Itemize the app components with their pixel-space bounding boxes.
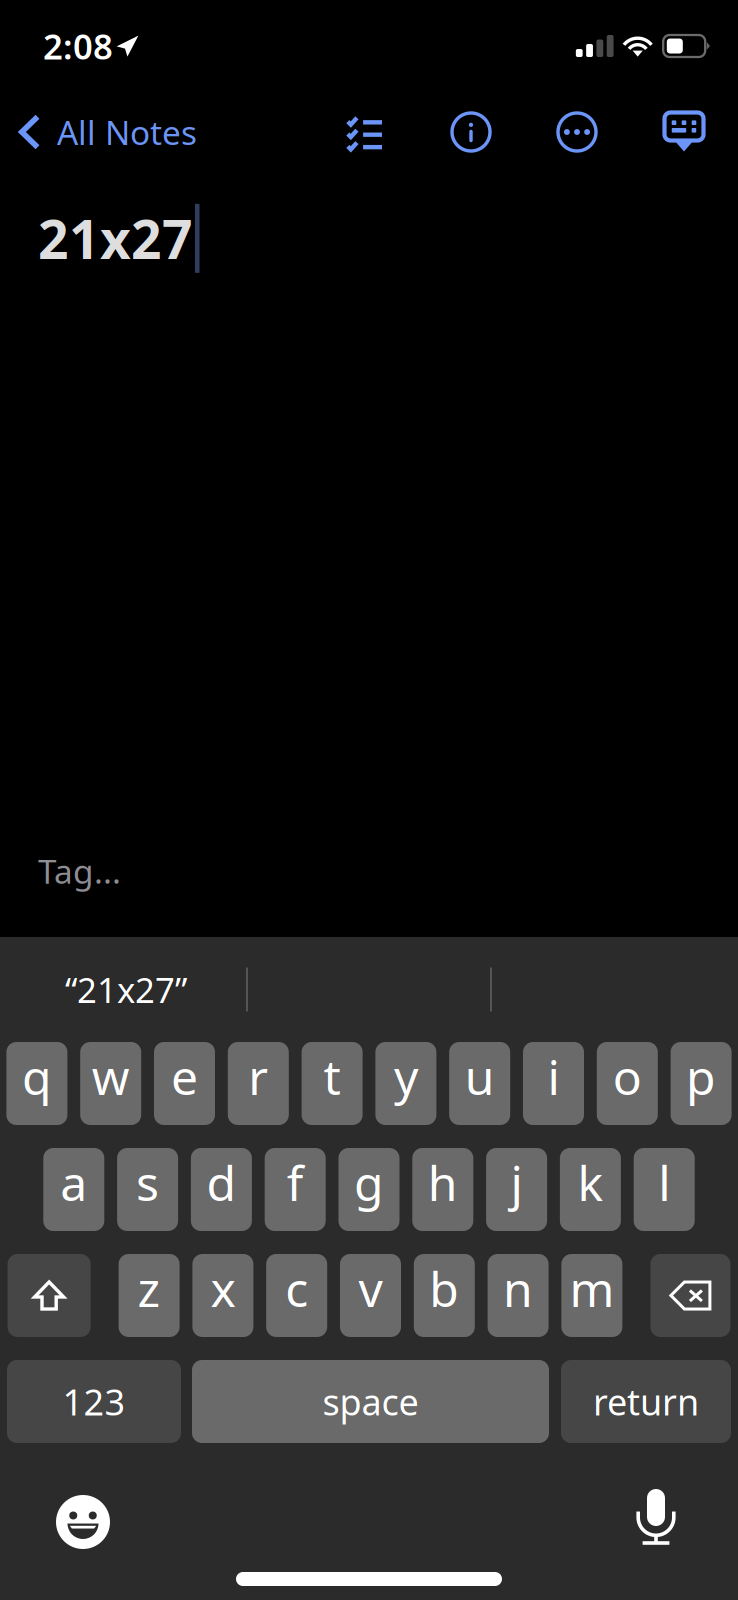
- button[interactable]: Checklist: [327, 92, 403, 172]
- staticText: n: [503, 1257, 533, 1320]
- button[interactable]: m: [561, 1254, 622, 1337]
- staticText: 2:08: [43, 23, 113, 69]
- button[interactable]: i: [523, 1042, 584, 1125]
- staticText: u: [465, 1045, 495, 1108]
- staticText: j: [511, 1151, 523, 1214]
- button[interactable]: v: [340, 1254, 401, 1337]
- staticText: a: [60, 1151, 87, 1214]
- staticText: e: [171, 1045, 198, 1108]
- button[interactable]: a: [43, 1148, 104, 1231]
- staticText: 123: [62, 1378, 125, 1425]
- staticText: q: [22, 1045, 52, 1108]
- staticText: h: [428, 1151, 458, 1214]
- button[interactable]: Dictate: [616, 1489, 696, 1555]
- button[interactable]: More options: [541, 92, 613, 172]
- staticText: c: [285, 1257, 308, 1320]
- button[interactable]: space: [192, 1360, 549, 1443]
- button[interactable]: p: [671, 1042, 732, 1125]
- button[interactable]: “21x27”: [6, 950, 246, 1028]
- staticText: d: [206, 1151, 236, 1214]
- staticText: f: [287, 1151, 304, 1214]
- button[interactable]: h: [412, 1148, 473, 1231]
- button[interactable]: 123: [7, 1360, 181, 1443]
- button[interactable]: j: [486, 1148, 547, 1231]
- button[interactable]: o: [597, 1042, 658, 1125]
- button[interactable]: f: [265, 1148, 326, 1231]
- staticText: 21x27: [38, 203, 193, 274]
- staticText: “21x27”: [65, 966, 187, 1012]
- staticText: t: [324, 1045, 341, 1108]
- staticText: r: [248, 1045, 268, 1108]
- staticText: v: [358, 1257, 382, 1320]
- button[interactable]: k: [560, 1148, 621, 1231]
- button[interactable]: u: [449, 1042, 510, 1125]
- button[interactable]: l: [634, 1148, 695, 1231]
- button[interactable]: d: [191, 1148, 252, 1231]
- staticText: g: [354, 1151, 384, 1214]
- staticText: y: [394, 1045, 418, 1108]
- staticText: z: [138, 1257, 161, 1320]
- staticText: w: [92, 1045, 130, 1108]
- staticText: o: [613, 1045, 642, 1108]
- button[interactable]: s: [117, 1148, 178, 1231]
- button[interactable]: e: [154, 1042, 215, 1125]
- button[interactable]: y: [375, 1042, 436, 1125]
- button[interactable]: z: [119, 1254, 180, 1337]
- button[interactable]: x: [192, 1254, 253, 1337]
- button[interactable]: g: [338, 1148, 399, 1231]
- button[interactable]: Emoji: [43, 1489, 123, 1555]
- button[interactable]: Hide keyboard: [643, 92, 715, 172]
- button[interactable]: b: [414, 1254, 475, 1337]
- button[interactable]: return: [561, 1360, 731, 1443]
- button[interactable]: c: [266, 1254, 327, 1337]
- staticText: p: [686, 1045, 716, 1108]
- staticText: space: [322, 1378, 418, 1425]
- staticText: Tag...: [38, 849, 121, 893]
- button[interactable]: r: [228, 1042, 289, 1125]
- button[interactable]: n: [488, 1254, 549, 1337]
- staticText: b: [429, 1257, 459, 1320]
- button[interactable]: w: [80, 1042, 141, 1125]
- button[interactable]: Delete: [650, 1254, 730, 1337]
- button[interactable]: q: [6, 1042, 67, 1125]
- button[interactable]: Note info: [435, 92, 507, 172]
- staticText: l: [658, 1151, 670, 1214]
- staticText: s: [136, 1151, 159, 1214]
- staticText: m: [569, 1257, 614, 1320]
- staticText: All Notes: [57, 110, 197, 154]
- staticText: k: [577, 1151, 603, 1214]
- staticText: i: [547, 1045, 559, 1108]
- staticText: x: [210, 1257, 235, 1320]
- button[interactable]: Shift: [8, 1254, 91, 1337]
- staticText: return: [593, 1378, 699, 1425]
- button[interactable]: t: [302, 1042, 363, 1125]
- button[interactable]: All Notes: [0, 92, 211, 172]
